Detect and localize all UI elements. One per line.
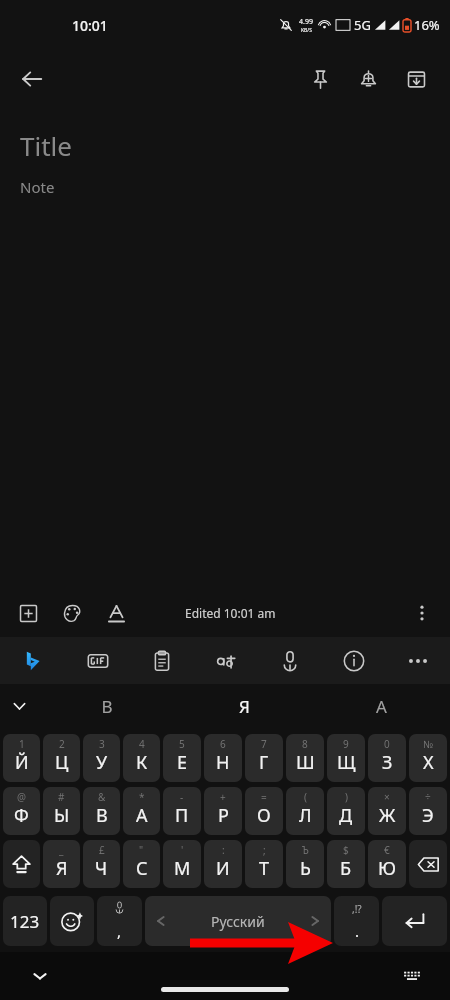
button[interactable]: ( (286, 787, 324, 835)
button[interactable]: " (123, 840, 160, 888)
button[interactable]: 3 (83, 734, 120, 782)
button[interactable]: * (123, 787, 160, 835)
button[interactable]: @ (3, 787, 40, 835)
staticText: 0 (384, 737, 390, 751)
button[interactable]: Shift (3, 840, 40, 888)
button[interactable]: ÷ (409, 787, 447, 835)
button[interactable]: 0 (368, 734, 406, 782)
button[interactable]: 123 (3, 896, 47, 946)
staticText: В (96, 803, 108, 828)
staticText: М (174, 856, 191, 881)
staticText: 16% (414, 16, 440, 34)
button[interactable]: А (313, 684, 450, 729)
staticText: И (216, 856, 230, 881)
button[interactable]: Русский (145, 896, 331, 946)
button[interactable]: & (83, 787, 120, 835)
button[interactable]: - (163, 787, 201, 835)
staticText: Ю (378, 856, 396, 881)
button[interactable]: 1 (3, 734, 40, 782)
button[interactable]: × (368, 787, 406, 835)
staticText: Я (239, 695, 250, 718)
button[interactable]: : (204, 840, 242, 888)
button[interactable]: 2 (43, 734, 80, 782)
button[interactable]: Hide keyboard (22, 958, 58, 994)
button[interactable]: Info (322, 637, 386, 684)
staticText: Я (56, 856, 68, 881)
button[interactable]: Backspace (409, 840, 447, 888)
button[interactable]: ) (327, 787, 365, 835)
staticText: : (222, 843, 225, 857)
staticText: Т (259, 856, 270, 881)
button[interactable]: Punctuation (334, 896, 379, 946)
staticText: Ф (14, 803, 29, 828)
button[interactable]: Voice input and comma (97, 896, 142, 946)
staticText: Ц (55, 750, 69, 775)
button[interactable]: 9 (327, 734, 365, 782)
button[interactable]: + (204, 787, 242, 835)
staticText: - (180, 790, 184, 804)
button[interactable]: GIF (65, 637, 130, 684)
button[interactable]: £ (83, 840, 120, 888)
staticText: Й (15, 750, 29, 775)
button[interactable]: # (43, 787, 80, 835)
staticText: Х (423, 750, 434, 775)
button[interactable]: 5 (163, 734, 201, 782)
staticText: Г (259, 750, 269, 775)
button[interactable]: 8 (286, 734, 324, 782)
button[interactable]: 6 (204, 734, 242, 782)
button[interactable]: ; (245, 840, 283, 888)
button[interactable]: В (38, 684, 176, 729)
staticText: £ (99, 843, 105, 857)
button[interactable]: = (245, 787, 283, 835)
button[interactable]: Change keyboard (394, 958, 430, 994)
button[interactable]: Translate (194, 637, 258, 684)
button[interactable]: Color palette (50, 591, 94, 635)
button[interactable]: Back (10, 57, 54, 101)
button[interactable]: Clipboard (130, 637, 194, 684)
staticText: 8 (302, 737, 308, 751)
button[interactable]: _ (43, 840, 80, 888)
button[interactable]: 4 (123, 734, 160, 782)
staticText: 7 (261, 737, 267, 751)
button[interactable]: Archive (394, 57, 438, 101)
button[interactable]: Text format (94, 591, 138, 635)
button[interactable]: 7 (245, 734, 283, 782)
button[interactable]: More (386, 637, 450, 684)
staticText: 6 (220, 737, 226, 751)
staticText: 123 (10, 910, 40, 933)
staticText: 10:01 (72, 16, 108, 35)
staticText: 4 (139, 737, 145, 751)
staticText: В (101, 695, 113, 718)
staticText: П (175, 803, 189, 828)
staticText: @ (17, 790, 26, 804)
button[interactable]: Reminder (346, 57, 390, 101)
staticText: 3 (99, 737, 105, 751)
staticText: 2 (59, 737, 65, 751)
staticText: _ (59, 843, 64, 857)
button[interactable]: Bing (0, 637, 65, 684)
staticText: # (58, 790, 65, 804)
staticText: Ж (379, 803, 396, 828)
button[interactable]: № (409, 734, 447, 782)
button[interactable]: Pin (298, 57, 342, 101)
staticText: 5G (354, 16, 371, 34)
button[interactable]: Я (176, 684, 313, 729)
staticText: С (136, 856, 148, 881)
button[interactable]: ' (163, 840, 201, 888)
button[interactable]: Title (20, 128, 430, 163)
button[interactable]: Add (6, 591, 50, 635)
button[interactable]: € (368, 840, 406, 888)
button[interactable]: Enter (382, 896, 447, 946)
button[interactable]: Close suggestions (2, 690, 36, 724)
staticText: Э (422, 803, 434, 828)
staticText: ' (181, 843, 184, 857)
button[interactable]: More options (402, 593, 442, 633)
button[interactable]: Voice input (258, 637, 322, 684)
button[interactable]: Ъ (286, 840, 324, 888)
button[interactable]: $ (327, 840, 365, 888)
staticText: " (139, 843, 144, 857)
button[interactable]: Emoji (50, 896, 94, 946)
staticText: 5 (179, 737, 185, 751)
staticText: ,!? (352, 902, 362, 916)
